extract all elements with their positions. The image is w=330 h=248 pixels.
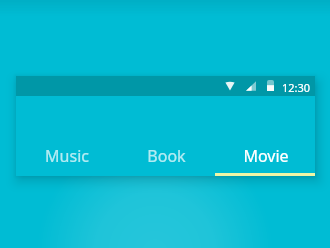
staticText: Music (45, 145, 89, 167)
button[interactable]: Book (115, 139, 215, 176)
staticText: Movie (243, 145, 289, 167)
other: Battery (267, 80, 274, 91)
other: Mobile signal (246, 81, 256, 91)
staticText: 12:30 (282, 80, 311, 95)
other: Wi-Fi (225, 81, 235, 91)
button[interactable]: Movie (215, 139, 315, 176)
staticText: Book (147, 145, 186, 167)
button[interactable]: Music (16, 139, 115, 176)
